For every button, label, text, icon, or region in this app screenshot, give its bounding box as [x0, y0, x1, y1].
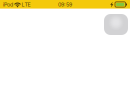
staticText: iPod	[3, 1, 13, 8]
staticText: 09:59	[58, 1, 72, 8]
button[interactable]: Loading	[104, 14, 128, 35]
staticText: LTE	[21, 1, 30, 8]
